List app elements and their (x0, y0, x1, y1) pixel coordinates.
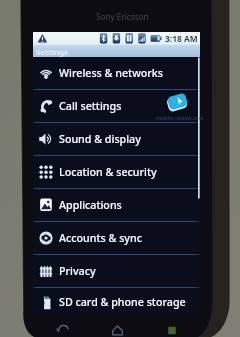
staticText: Settings (36, 47, 68, 58)
staticText: mobile-review.com (156, 114, 204, 121)
button[interactable]: Sound & display (33, 123, 200, 155)
button[interactable]: Back (53, 320, 74, 337)
staticText: Accounts & sync (59, 231, 142, 246)
button[interactable]: Menu (162, 320, 183, 337)
staticText: Applications (59, 198, 122, 213)
staticText: 3:18 AM (165, 33, 198, 44)
button[interactable]: Applications (33, 189, 200, 221)
staticText: Call settings (59, 99, 122, 114)
staticText: Wireless & networks (59, 66, 164, 81)
button[interactable]: Accounts & sync (33, 222, 200, 254)
button[interactable]: Wireless & networks (33, 57, 200, 89)
staticText: Location & security (59, 165, 157, 180)
button[interactable]: Home (107, 320, 128, 337)
button[interactable]: Privacy (33, 255, 200, 287)
button[interactable]: Location & security (33, 156, 200, 188)
staticText: Sony Ericsson (96, 11, 149, 22)
button[interactable]: Call settings (33, 90, 200, 122)
staticText: Privacy (59, 264, 96, 279)
button[interactable]: SD card & phone storage (33, 288, 200, 317)
staticText: Sound & display (59, 132, 141, 147)
staticText: SD card & phone storage (59, 295, 186, 310)
